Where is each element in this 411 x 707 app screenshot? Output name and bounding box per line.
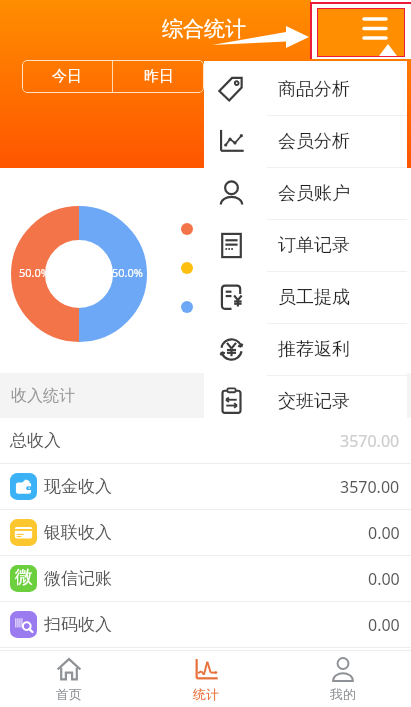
button[interactable]: 昨日 xyxy=(113,60,204,93)
staticText: 综合统计 xyxy=(162,16,246,42)
button[interactable]: 微 xyxy=(0,556,411,601)
staticText: 会员分析 xyxy=(278,130,350,153)
staticText: 微 xyxy=(15,566,33,589)
button[interactable]: Menu xyxy=(317,8,405,57)
staticText: 员工提成 xyxy=(278,286,350,309)
staticText: 统计 xyxy=(193,686,219,702)
button[interactable]: 首页 xyxy=(0,651,137,707)
staticText: 推荐返利 xyxy=(278,338,350,361)
staticText: 0.00 xyxy=(368,614,400,636)
staticText: 交班记录 xyxy=(278,390,350,413)
button[interactable]: 总收入 xyxy=(0,418,411,463)
button[interactable]: 商品分析 xyxy=(204,64,407,115)
staticText: 会员账户 xyxy=(278,182,350,205)
staticText: 扫码收入 xyxy=(44,614,112,635)
button[interactable]: 我的 xyxy=(274,651,411,707)
staticText: 商品分析 xyxy=(278,78,350,101)
staticText: 微信记账 xyxy=(44,568,112,589)
staticText: 总收入 xyxy=(10,430,61,451)
staticText: 首页 xyxy=(56,686,82,702)
button[interactable]: 交班记录 xyxy=(204,376,407,427)
staticText: 收入统计 xyxy=(11,386,75,406)
button[interactable]: 现金收入 xyxy=(0,464,411,509)
staticText: 0.00 xyxy=(368,568,400,590)
staticText: 订单记录 xyxy=(278,234,350,257)
staticText: 昨日 xyxy=(144,67,174,86)
staticText: 3570.00 xyxy=(340,476,400,498)
button[interactable]: 统计 xyxy=(137,651,274,707)
button[interactable]: 银联收入 xyxy=(0,510,411,555)
button[interactable]: 员工提成 xyxy=(204,272,407,323)
button[interactable]: 订单记录 xyxy=(204,220,407,271)
button[interactable]: 会员账户 xyxy=(204,168,407,219)
button[interactable]: 今日 xyxy=(22,60,112,93)
staticText: 50.0% xyxy=(112,265,143,280)
button[interactable]: 扫码收入 xyxy=(0,602,411,647)
button[interactable]: 推荐返利 xyxy=(204,324,407,375)
staticText: 今日 xyxy=(52,67,82,86)
staticText: 现金收入 xyxy=(44,476,112,497)
staticText: 0.00 xyxy=(368,522,400,544)
staticText: 我的 xyxy=(330,686,356,702)
staticText: 50.0% xyxy=(19,265,50,280)
staticText: 3570.00 xyxy=(340,430,400,452)
staticText: 银联收入 xyxy=(44,522,112,543)
button[interactable]: 会员分析 xyxy=(204,116,407,167)
